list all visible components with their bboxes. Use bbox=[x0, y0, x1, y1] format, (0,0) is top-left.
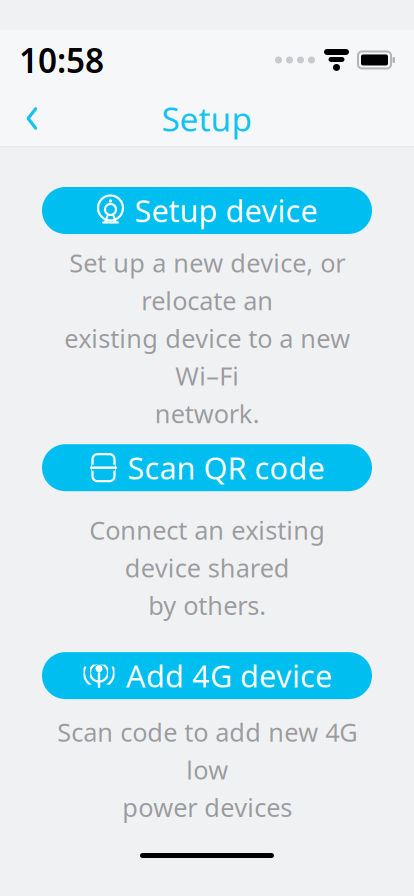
staticText: Connect an existing device shared by oth… bbox=[89, 513, 325, 622]
button[interactable]: Add 4G device bbox=[42, 652, 372, 699]
staticText: Set up a new device, or relocate an exis… bbox=[64, 246, 350, 430]
button[interactable]: Setup device bbox=[42, 187, 372, 234]
staticText: Scan code to add new 4G low power device… bbox=[57, 715, 357, 824]
staticText: 10:58 bbox=[19, 38, 104, 82]
staticText: Scan QR code bbox=[127, 447, 324, 488]
staticText: Setup bbox=[161, 96, 252, 141]
button[interactable]: Back bbox=[6, 92, 58, 144]
staticText: Setup device bbox=[134, 190, 317, 231]
button[interactable]: Scan QR code bbox=[42, 444, 372, 491]
staticText: Add 4G device bbox=[126, 655, 332, 696]
